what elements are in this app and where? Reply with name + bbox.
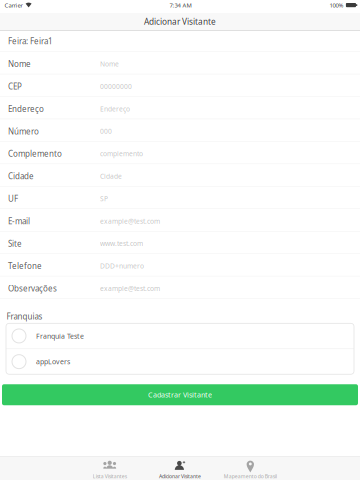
staticText: Carrier — [4, 1, 22, 9]
staticText: Cidade — [100, 172, 122, 181]
staticText: 00000000 — [100, 82, 132, 91]
staticText: DDD+numero — [100, 261, 144, 270]
staticText: Franquia Teste — [36, 331, 84, 341]
button[interactable]: appLovers — [6, 349, 354, 374]
staticText: www.test.com — [100, 239, 143, 248]
staticText: example@test.com — [100, 216, 160, 226]
staticText: Telefone — [8, 260, 42, 271]
staticText: example@test.com — [100, 284, 160, 293]
staticText: 000 — [100, 127, 112, 136]
staticText: 7:34 AM — [169, 1, 191, 9]
button[interactable]: Adicionar Visitante — [145, 457, 215, 480]
staticText: Franquias — [6, 311, 42, 322]
staticText: complemento — [100, 149, 143, 158]
staticText: Site — [8, 238, 22, 249]
button[interactable]: Cadastrar Visitante — [0, 384, 360, 405]
button[interactable]: Mapeamento do Brasil — [215, 457, 285, 480]
staticText: Mapeamento do Brasil — [224, 473, 277, 480]
staticText: Cadastrar Visitante — [148, 390, 212, 400]
button[interactable]: Franquia Teste — [6, 323, 354, 349]
staticText: appLovers — [36, 357, 70, 366]
staticText: Nome — [100, 59, 119, 68]
staticText: Endereço — [100, 104, 130, 113]
staticText: Lista Visitantes — [93, 473, 127, 480]
staticText: Cidade — [8, 171, 34, 182]
staticText: E-mail — [8, 216, 30, 226]
staticText: Número — [8, 126, 39, 137]
button[interactable]: Lista Visitantes — [74, 457, 145, 480]
staticText: Complemento — [8, 148, 62, 159]
staticText: Observações — [8, 283, 57, 294]
staticText: SP — [100, 194, 108, 203]
staticText: Adicionar Visitante — [159, 473, 201, 480]
staticText: Feira: Feira1 — [8, 36, 53, 47]
staticText: CEP — [8, 81, 22, 92]
staticText: Endereço — [8, 103, 44, 114]
staticText: UF — [8, 193, 18, 204]
staticText: Adicionar Visitante — [144, 16, 216, 27]
staticText: Nome — [8, 58, 31, 69]
staticText: 100% — [329, 1, 343, 9]
